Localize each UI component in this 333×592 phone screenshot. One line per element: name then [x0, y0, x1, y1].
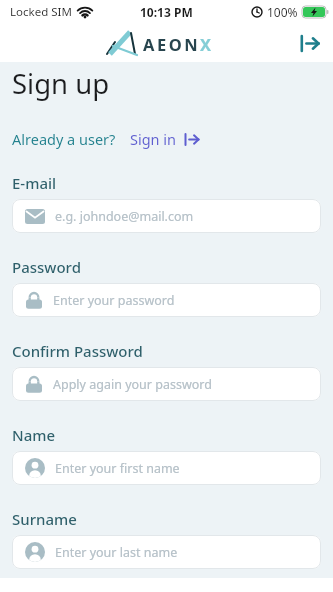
staticText: Sign up	[12, 65, 110, 102]
staticText: e.g. johndoe@mail.com	[55, 208, 194, 225]
button[interactable]: Apply again your password	[12, 367, 321, 401]
staticText: Apply again your password	[53, 376, 212, 393]
button[interactable]: e.g. johndoe@mail.com	[12, 199, 321, 233]
staticText: Locked SIM	[10, 4, 72, 20]
button[interactable]: Enter your first name	[12, 451, 321, 485]
staticText: AEONX	[143, 33, 214, 55]
staticText: 100%	[267, 4, 298, 20]
staticText: Enter your last name	[55, 544, 178, 561]
button[interactable]: Enter your last name	[12, 535, 321, 569]
button[interactable]: Enter your password	[12, 283, 321, 317]
staticText: Sign in	[130, 129, 177, 149]
staticText: Password	[12, 257, 81, 277]
staticText: Confirm Password	[12, 341, 143, 361]
button[interactable]	[298, 31, 322, 55]
staticText: Already a user?	[12, 129, 116, 149]
staticText: Name	[12, 425, 56, 445]
staticText: Enter your first name	[55, 460, 180, 477]
staticText: Enter your password	[53, 292, 175, 309]
staticText: Surname	[12, 509, 77, 529]
staticText: E-mail	[12, 173, 57, 193]
staticText: 10:13 PM	[140, 4, 193, 20]
button[interactable]: Already a user?	[12, 129, 200, 149]
